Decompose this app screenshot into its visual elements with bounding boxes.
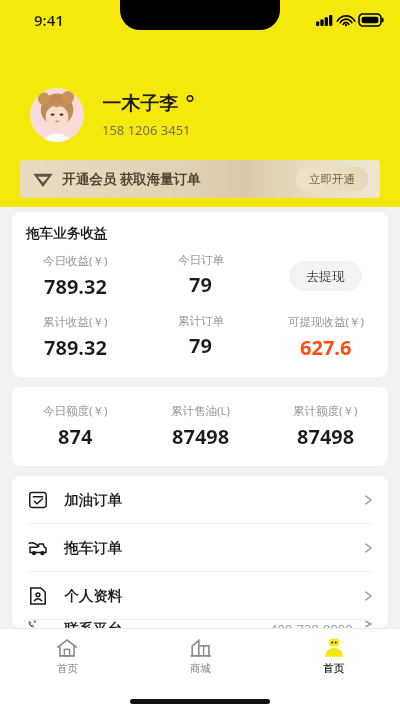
button[interactable]: 首页 — [267, 629, 400, 683]
staticText: 累计额度(￥) — [293, 403, 358, 419]
button[interactable]: 立即开通 — [309, 167, 355, 191]
staticText: 79 — [189, 271, 212, 298]
staticText: 累计收益(￥) — [43, 314, 108, 330]
staticText: 874 — [58, 423, 93, 450]
staticText: 158 1206 3451 — [102, 121, 191, 139]
button[interactable]: Profile photo — [30, 88, 400, 142]
staticText: 拖车订单 — [64, 539, 122, 557]
staticText: 9:41 — [34, 10, 64, 30]
staticText: 开通会员 获取海量订单 — [62, 170, 201, 188]
staticText: 今日订单 — [178, 253, 224, 267]
staticText: 789.32 — [44, 273, 107, 300]
staticText: 首页 — [57, 662, 78, 675]
button[interactable]: 开通会员 获取海量订单 — [20, 160, 380, 198]
staticText: 联系平台 — [64, 620, 122, 628]
button[interactable]: 去提现 — [306, 261, 345, 291]
staticText: 立即开通 — [309, 172, 355, 186]
staticText: 627.6 — [300, 334, 352, 361]
staticText: 87498 — [297, 423, 355, 450]
staticText: 今日收益(￥) — [43, 253, 108, 269]
staticText: 拖车业务收益 — [26, 225, 107, 242]
staticText: 可提现收益(￥) — [288, 314, 364, 330]
staticText: 首页 — [323, 662, 344, 675]
button[interactable]: Profile photo — [30, 88, 84, 142]
staticText: 789.32 — [44, 334, 107, 361]
staticText: 累计订单 — [178, 314, 224, 328]
staticText: 累计售油(L) — [171, 403, 230, 419]
button[interactable]: 商城 — [134, 629, 267, 683]
button[interactable]: 拖车订单 — [12, 524, 388, 572]
staticText: 87498 — [172, 423, 230, 450]
button[interactable]: 加油订单 — [12, 476, 388, 524]
button[interactable]: 首页 — [0, 629, 134, 683]
staticText: 去提现 — [306, 268, 345, 284]
staticText: 79 — [189, 332, 212, 359]
staticText: 今日额度(￥) — [43, 403, 108, 419]
staticText: 加油订单 — [64, 491, 122, 509]
button[interactable]: 联系平台 — [12, 620, 388, 628]
staticText: 400-738-9999 — [270, 620, 353, 628]
button[interactable]: 个人资料 — [12, 572, 388, 620]
staticText: 商城 — [190, 662, 211, 675]
staticText: 一木子李 — [102, 92, 178, 116]
staticText: 个人资料 — [64, 587, 122, 605]
